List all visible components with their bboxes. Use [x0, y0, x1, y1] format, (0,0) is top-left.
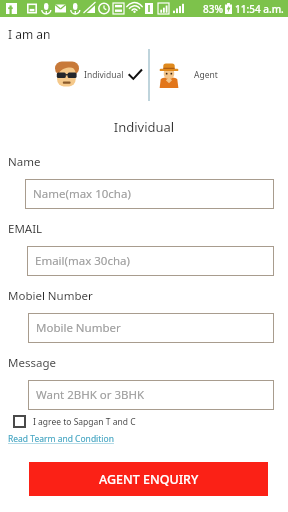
staticText: Want 2BHK or 3BHK: [36, 387, 145, 403]
button[interactable]: Individual: [0, 60, 148, 90]
other: I agree checkbox: [13, 415, 26, 428]
staticText: 83%: [203, 2, 223, 16]
staticText: EMAIL: [8, 221, 43, 237]
staticText: Mobile Number: [36, 320, 121, 336]
button[interactable]: Email(max 30cha): [27, 246, 274, 276]
staticText: Agent: [194, 69, 218, 81]
staticText: Individual: [84, 69, 124, 81]
button[interactable]: Name(max 10cha): [25, 179, 274, 209]
staticText: Email(max 30cha): [35, 253, 130, 269]
button[interactable]: Read Tearm and Condition: [8, 433, 114, 445]
staticText: I am an: [8, 26, 51, 42]
button[interactable]: AGENT ENQUIRY: [29, 462, 268, 496]
button[interactable]: Want 2BHK or 3BHK: [28, 380, 274, 410]
button[interactable]: Agent: [150, 62, 288, 88]
staticText: Name: [8, 154, 41, 170]
button[interactable]: Mobile Number: [28, 313, 274, 343]
other: Selected: [128, 68, 142, 82]
staticText: 11:54 a.m.: [235, 2, 284, 16]
button[interactable]: I agree checkbox: [13, 415, 136, 428]
staticText: I agree to Sapgan T and C: [33, 416, 136, 428]
staticText: Individual: [0, 118, 288, 136]
staticText: Name(max 10cha): [33, 186, 131, 202]
staticText: Mobiel Number: [8, 288, 93, 304]
staticText: Message: [8, 355, 56, 371]
staticText: AGENT ENQUIRY: [99, 471, 199, 488]
